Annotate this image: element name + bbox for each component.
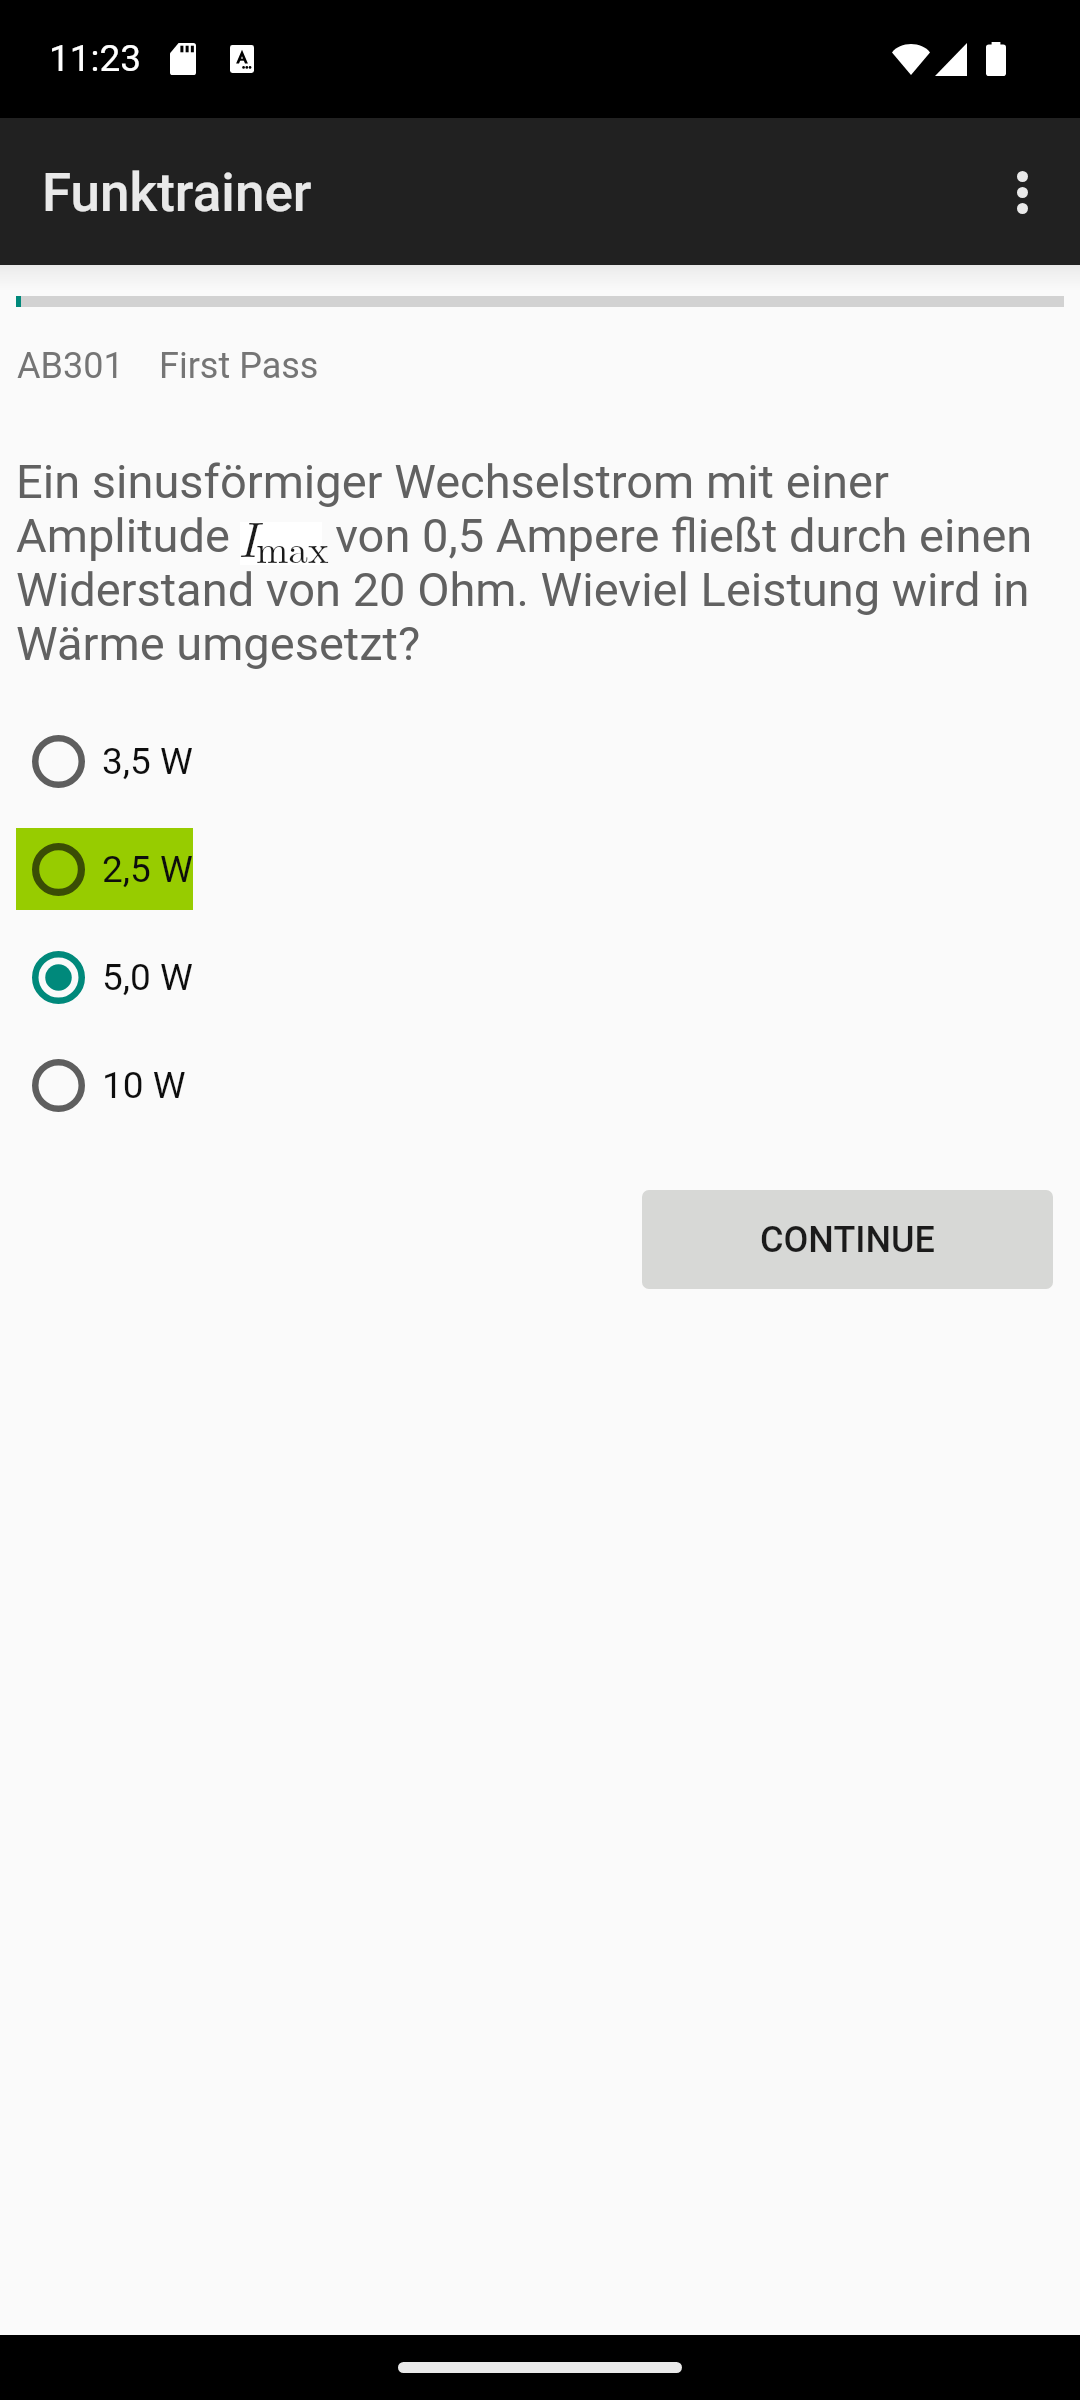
staticText: 2,5 W (102, 848, 193, 891)
staticText: Ein sinusförmiger Wechselstrom mit einer… (16, 455, 1064, 671)
staticText: CONTINUE (760, 1219, 935, 1261)
button[interactable]: 3,5 W (32, 720, 193, 802)
staticText: 5,0 W (102, 956, 193, 999)
button[interactable]: 5,0 W (32, 936, 193, 1018)
staticText: AB301 (17, 345, 124, 387)
staticText: 10 W (102, 1064, 186, 1107)
staticText: 3,5 W (102, 740, 193, 783)
staticText: Funktrainer (42, 162, 312, 224)
staticText: 11:23 (49, 37, 142, 80)
button[interactable]: 2,5 W (32, 828, 193, 910)
staticText: First Pass (159, 345, 319, 387)
button[interactable]: CONTINUE (642, 1190, 1053, 1289)
button[interactable]: More options (967, 137, 1077, 247)
button[interactable]: 10 W (32, 1044, 186, 1126)
other: Quiz progress (16, 296, 1064, 307)
